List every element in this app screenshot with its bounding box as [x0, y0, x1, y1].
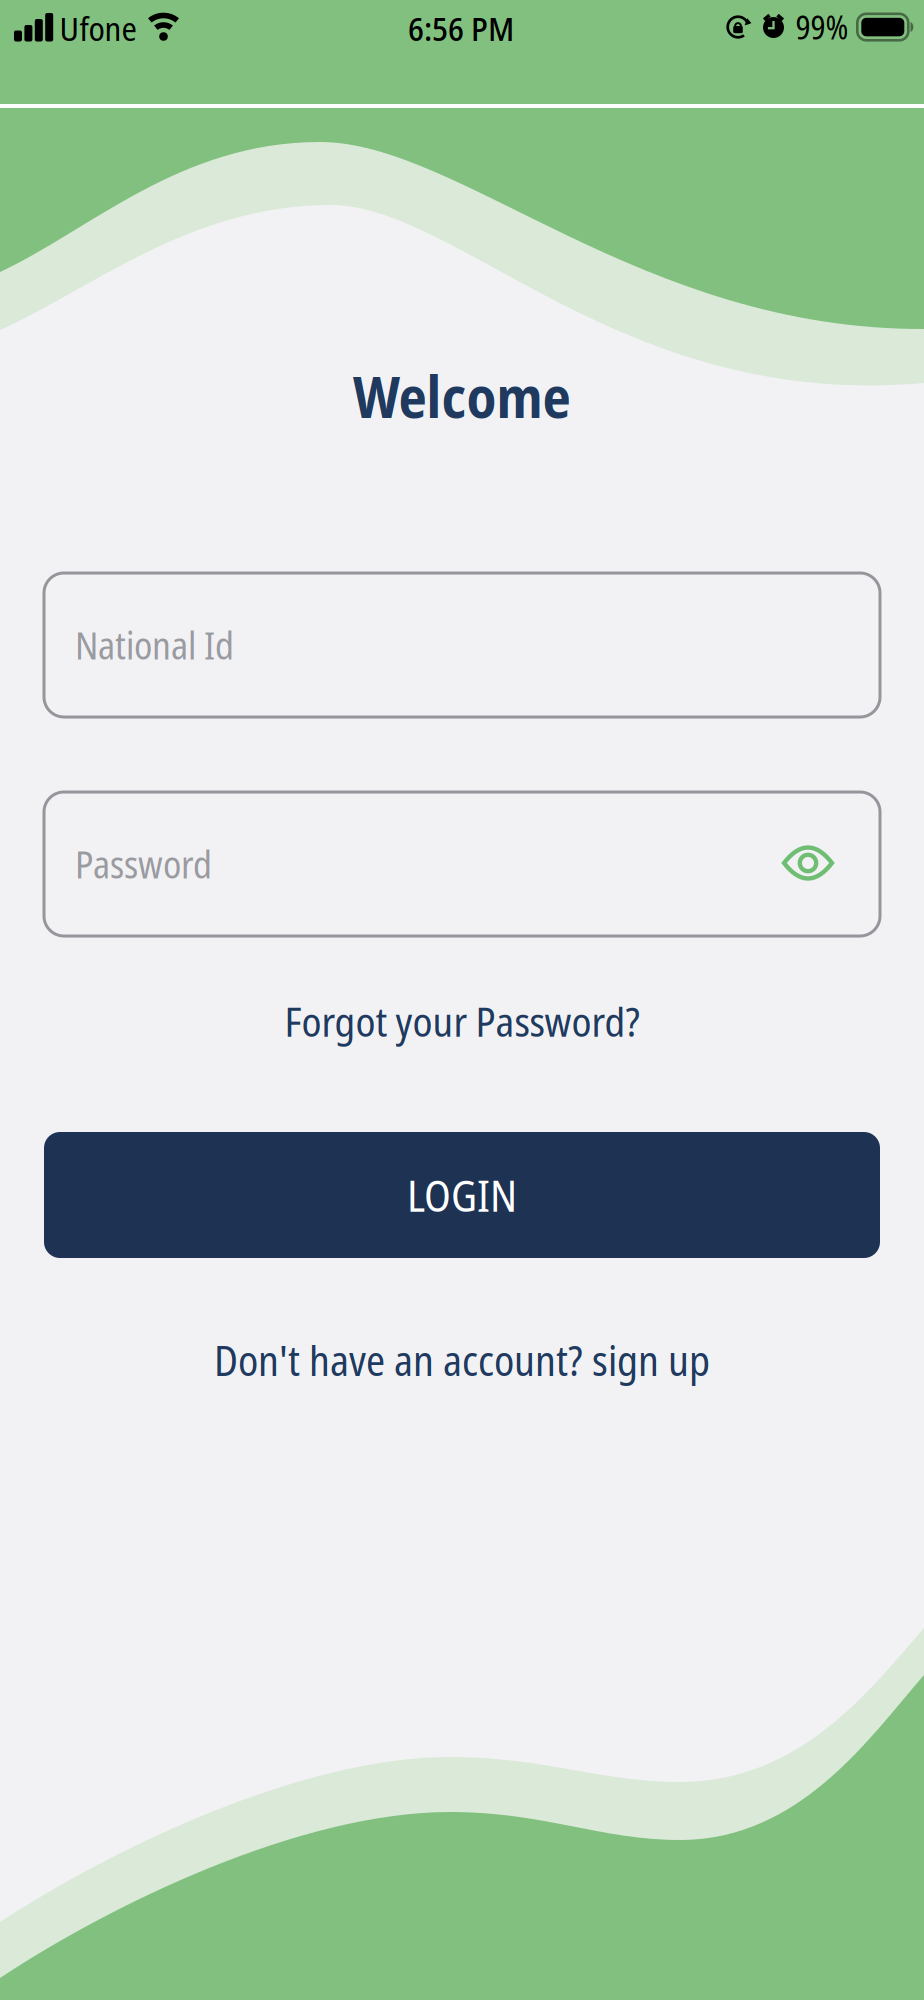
staticText: Don't have an account? sign up [214, 1332, 710, 1388]
button[interactable]: National Id [44, 573, 880, 717]
button[interactable]: Don't have an account? sign up [214, 1332, 710, 1388]
staticText: Welcome [353, 357, 570, 435]
staticText: Ufone [59, 5, 136, 51]
button[interactable]: Forgot your Password? [284, 993, 639, 1049]
staticText: Forgot your Password? [284, 993, 639, 1049]
staticText: Password [75, 839, 212, 889]
staticText: 6:56 PM [408, 5, 514, 51]
staticText: National Id [75, 620, 234, 670]
staticText: 99% [795, 5, 848, 49]
staticText: LOGIN [407, 1165, 517, 1224]
button[interactable]: LOGIN [44, 1132, 880, 1258]
button[interactable]: Password [44, 792, 880, 936]
